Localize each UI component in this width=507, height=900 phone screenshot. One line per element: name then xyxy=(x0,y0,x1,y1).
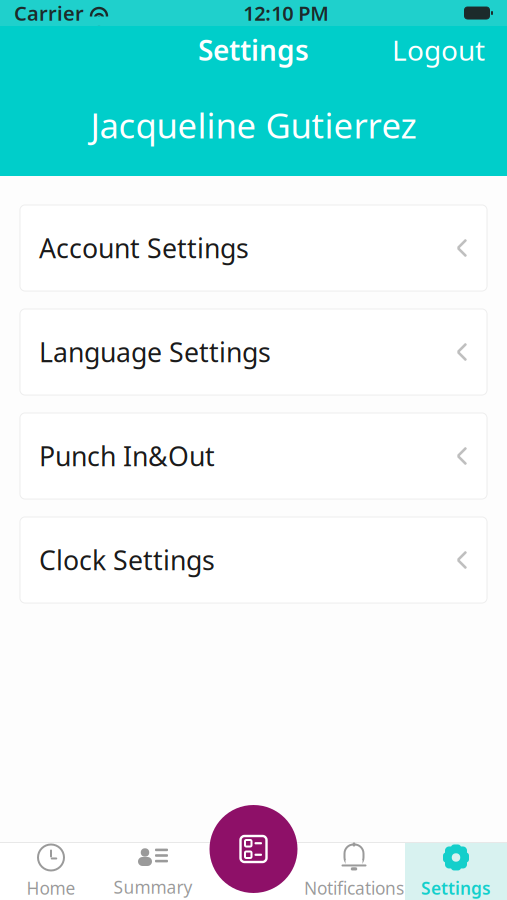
button[interactable]: Home xyxy=(0,843,102,900)
staticText: Settings xyxy=(421,876,491,899)
staticText: Settings xyxy=(198,31,309,69)
staticText: Punch In&Out xyxy=(39,438,215,474)
button[interactable]: Notifications xyxy=(303,843,405,900)
button[interactable]: Summary xyxy=(102,843,204,900)
staticText: Summary xyxy=(113,875,192,898)
staticText: 12:10 PM xyxy=(243,0,329,26)
staticText: Language Settings xyxy=(39,334,271,370)
button[interactable]: Logout xyxy=(382,25,495,75)
button[interactable]: Settings xyxy=(405,843,507,900)
button[interactable]: Punch In&Out xyxy=(20,413,487,499)
button[interactable]: Clock Settings xyxy=(20,517,487,603)
staticText: Notifications xyxy=(304,876,404,899)
staticText: Account Settings xyxy=(39,230,249,266)
staticText: Home xyxy=(26,876,75,899)
staticText: Jacqueline Gutierrez xyxy=(90,102,416,148)
button[interactable]: Account Settings xyxy=(20,205,487,291)
button[interactable]: Language Settings xyxy=(20,309,487,395)
staticText: Clock Settings xyxy=(39,542,215,578)
staticText: Logout xyxy=(392,31,485,69)
staticText: Carrier xyxy=(14,0,84,26)
button[interactable]: New entry xyxy=(209,805,297,893)
